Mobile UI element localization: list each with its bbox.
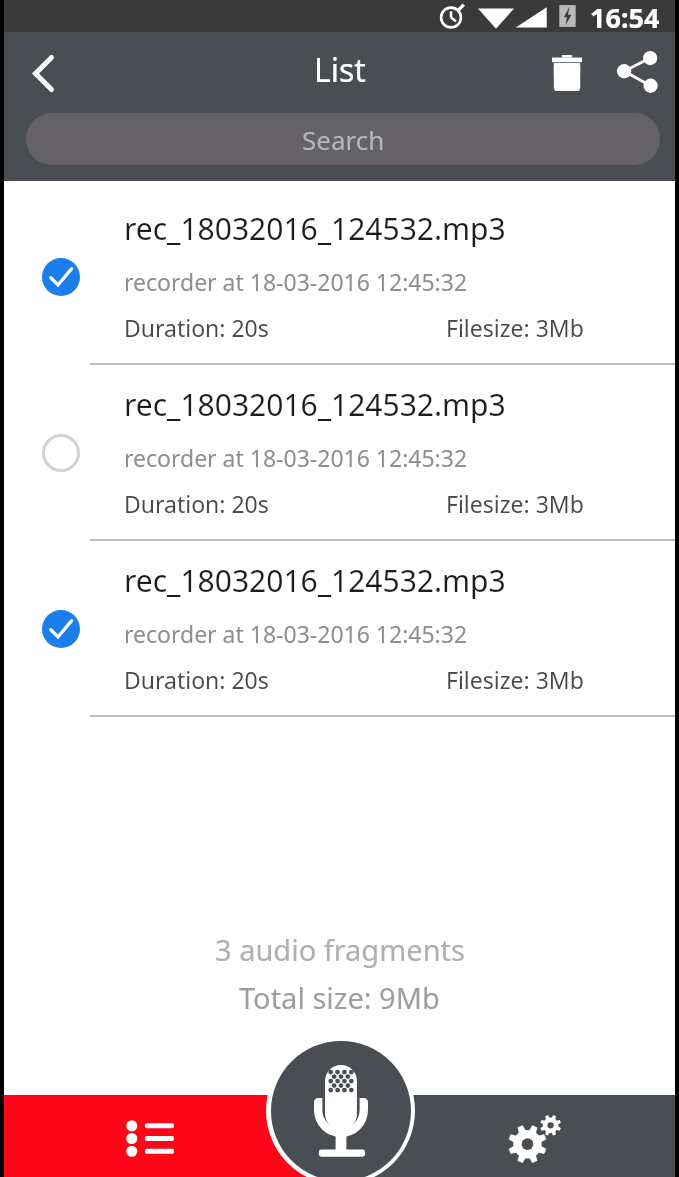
staticText: Search xyxy=(302,122,385,157)
button[interactable]: rec_18032016_124532.mp3 xyxy=(4,189,675,365)
staticText: 3 audio fragments xyxy=(215,930,465,969)
staticText: recorder at 18-03-2016 12:45:32 xyxy=(124,266,468,297)
button[interactable]: rec_18032016_124532.mp3 xyxy=(4,365,675,541)
button[interactable]: Search xyxy=(26,113,660,165)
button[interactable]: Record xyxy=(271,1041,411,1177)
staticText: recorder at 18-03-2016 12:45:32 xyxy=(124,442,468,473)
button[interactable]: Share xyxy=(608,43,668,103)
button[interactable]: Settings xyxy=(339,1095,675,1177)
button[interactable]: rec_18032016_124532.mp3 xyxy=(4,541,675,717)
staticText: Duration: 20s xyxy=(124,664,269,695)
staticText: Duration: 20s xyxy=(124,488,269,519)
staticText: Filesize: 3Mb xyxy=(446,488,584,519)
staticText: Total size: 9Mb xyxy=(239,978,440,1017)
staticText: rec_18032016_124532.mp3 xyxy=(124,384,506,425)
staticText: Filesize: 3Mb xyxy=(446,664,584,695)
staticText: Duration: 20s xyxy=(124,312,269,343)
button[interactable]: Back xyxy=(15,45,71,101)
staticText: List xyxy=(314,48,366,92)
button[interactable]: Recordings list xyxy=(4,1095,339,1177)
staticText: rec_18032016_124532.mp3 xyxy=(124,208,506,249)
staticText: 16:54 xyxy=(590,0,660,31)
staticText: rec_18032016_124532.mp3 xyxy=(124,560,506,601)
staticText: recorder at 18-03-2016 12:45:32 xyxy=(124,618,468,649)
staticText: Filesize: 3Mb xyxy=(446,312,584,343)
button[interactable]: Delete xyxy=(537,43,597,103)
